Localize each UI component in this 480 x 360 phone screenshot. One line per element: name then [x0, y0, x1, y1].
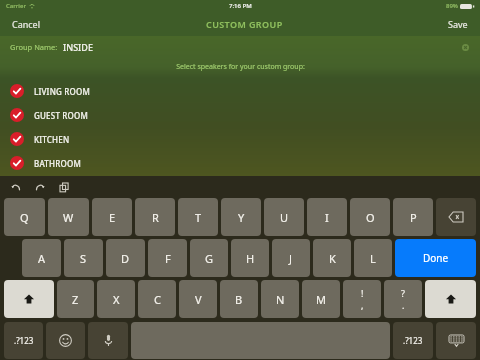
staticText: BATHROOM — [34, 158, 81, 169]
staticText: J — [289, 251, 293, 266]
button[interactable]: T — [178, 198, 218, 236]
button[interactable]: Shift — [425, 280, 476, 318]
staticText: ? — [401, 287, 405, 299]
button[interactable]: I — [307, 198, 347, 236]
staticText: K — [329, 251, 336, 266]
staticText: CUSTOM GROUP — [206, 18, 283, 30]
button[interactable]: Paste — [56, 179, 72, 195]
staticText: Cancel — [12, 18, 41, 30]
staticText: .?123 — [14, 335, 34, 346]
button[interactable]: Save — [446, 14, 470, 34]
button[interactable]: Redo — [32, 179, 48, 195]
button[interactable]: BATHROOM — [0, 151, 480, 175]
staticText: G — [205, 251, 214, 266]
button[interactable]: O — [350, 198, 390, 236]
button[interactable]: F — [148, 239, 187, 277]
staticText: S — [80, 251, 87, 266]
staticText: Save — [448, 18, 468, 30]
staticText: INSIDE — [63, 41, 93, 53]
button[interactable]: Hide keyboard — [436, 322, 476, 359]
button[interactable]: C — [138, 280, 176, 318]
staticText: LIVING ROOM — [34, 86, 91, 97]
staticText: C — [154, 292, 161, 307]
button[interactable]: .?123 — [4, 322, 43, 359]
button[interactable]: A — [22, 239, 61, 277]
button[interactable]: L — [354, 239, 392, 277]
staticText: M — [316, 292, 326, 307]
staticText: 7:16 PM — [229, 2, 252, 10]
staticText: Carrier — [6, 2, 26, 10]
staticText: P — [410, 210, 417, 225]
button[interactable]: B — [220, 280, 258, 318]
button[interactable]: KITCHEN — [0, 127, 480, 151]
staticText: I — [325, 210, 329, 225]
staticText: Y — [238, 210, 245, 225]
button[interactable]: U — [264, 198, 304, 236]
button[interactable]: Emoji — [46, 322, 85, 359]
button[interactable]: G — [190, 239, 228, 277]
staticText: V — [195, 292, 202, 307]
staticText: U — [280, 210, 289, 225]
button[interactable]: Dictation — [88, 322, 128, 359]
staticText: . — [402, 299, 405, 311]
button[interactable]: LIVING ROOM — [0, 79, 480, 103]
button[interactable]: X — [97, 280, 135, 318]
button[interactable]: Shift — [4, 280, 54, 318]
staticText: Q — [20, 210, 29, 225]
staticText: X — [113, 292, 120, 307]
staticText: O — [366, 210, 375, 225]
staticText: F — [165, 251, 171, 266]
staticText: Done — [423, 251, 449, 265]
staticText: .?123 — [403, 335, 423, 346]
staticText: L — [370, 251, 376, 266]
staticText: B — [235, 292, 243, 307]
button[interactable]: R — [135, 198, 175, 236]
button[interactable]: N — [261, 280, 299, 318]
button[interactable]: Cancel — [10, 14, 43, 34]
button[interactable]: W — [48, 198, 89, 236]
button[interactable]: J — [272, 239, 310, 277]
staticText: E — [109, 210, 116, 225]
staticText: GUEST ROOM — [34, 110, 89, 121]
button[interactable]: S — [64, 239, 103, 277]
button[interactable]: Y — [221, 198, 261, 236]
staticText: , — [361, 299, 364, 311]
staticText: A — [38, 251, 46, 266]
button[interactable]: GUEST ROOM — [0, 103, 480, 127]
button[interactable]: M — [302, 280, 340, 318]
button[interactable]: Clear text — [460, 42, 470, 52]
staticText: Z — [72, 292, 79, 307]
button[interactable]: K — [313, 239, 351, 277]
button[interactable]: P — [393, 198, 433, 236]
button[interactable]: Backspace — [436, 198, 476, 236]
button[interactable]: D — [106, 239, 145, 277]
staticText: H — [246, 251, 255, 266]
button[interactable]: H — [231, 239, 269, 277]
staticText: KITCHEN — [34, 134, 70, 145]
staticText: T — [195, 210, 202, 225]
button[interactable]: ! — [343, 280, 381, 318]
staticText: 89% — [446, 2, 458, 10]
staticText: R — [152, 210, 159, 225]
staticText: W — [63, 210, 74, 225]
button[interactable]: ? — [384, 280, 422, 318]
staticText: D — [121, 251, 130, 266]
staticText: N — [276, 292, 285, 307]
staticText: Group Name: — [10, 42, 58, 52]
button[interactable]: Done — [395, 239, 476, 277]
button[interactable]: .?123 — [393, 322, 433, 359]
staticText: ! — [361, 287, 364, 299]
button[interactable]: V — [179, 280, 217, 318]
button[interactable]: Undo — [8, 179, 24, 195]
button[interactable]: E — [92, 198, 132, 236]
button[interactable]: Q — [4, 198, 45, 236]
button[interactable]: Z — [57, 280, 94, 318]
staticText: Select speakers for your custom group: — [176, 62, 305, 72]
